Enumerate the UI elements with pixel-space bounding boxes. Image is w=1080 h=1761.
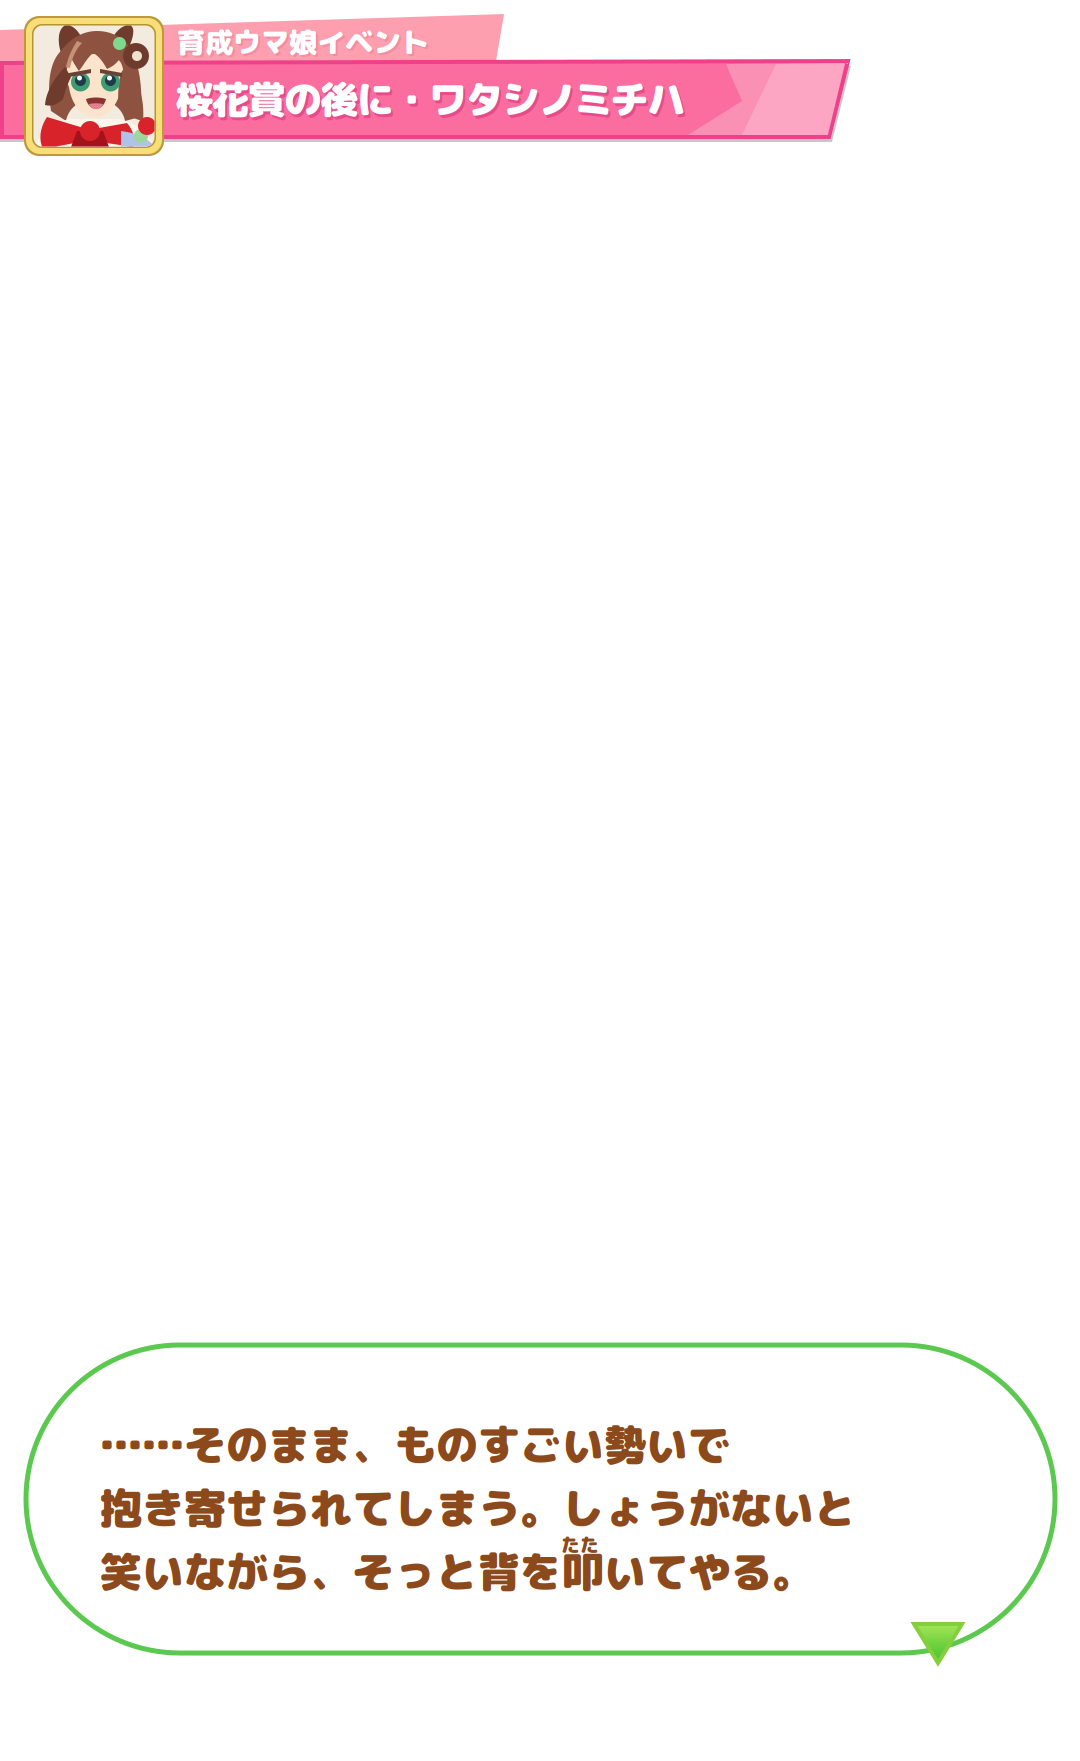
button[interactable]: 桜花賞の後に・ワタシノミチハ [175, 76, 815, 122]
button[interactable]: ……そのまま、ものすごい勢いで [26, 1345, 1055, 1653]
staticText: 桜花賞の後に・ワタシノミチハ [177, 75, 687, 128]
staticText: 育成ウマ娘イベント [177, 22, 429, 62]
staticText: 笑いながら、そっと背を叩いてやる。 [100, 1542, 814, 1601]
staticText: たた [561, 1532, 599, 1558]
staticText: 桜花賞の後に・ワタシノミチハ [175, 72, 685, 125]
staticText: ……そのまま、ものすごい勢いで [100, 1415, 730, 1474]
staticText: 育成ウマ娘イベント [179, 24, 431, 64]
staticText: 抱き寄せられてしまう。しょうがないと [100, 1479, 856, 1537]
button[interactable]: 育成ウマ娘イベント [177, 27, 477, 57]
